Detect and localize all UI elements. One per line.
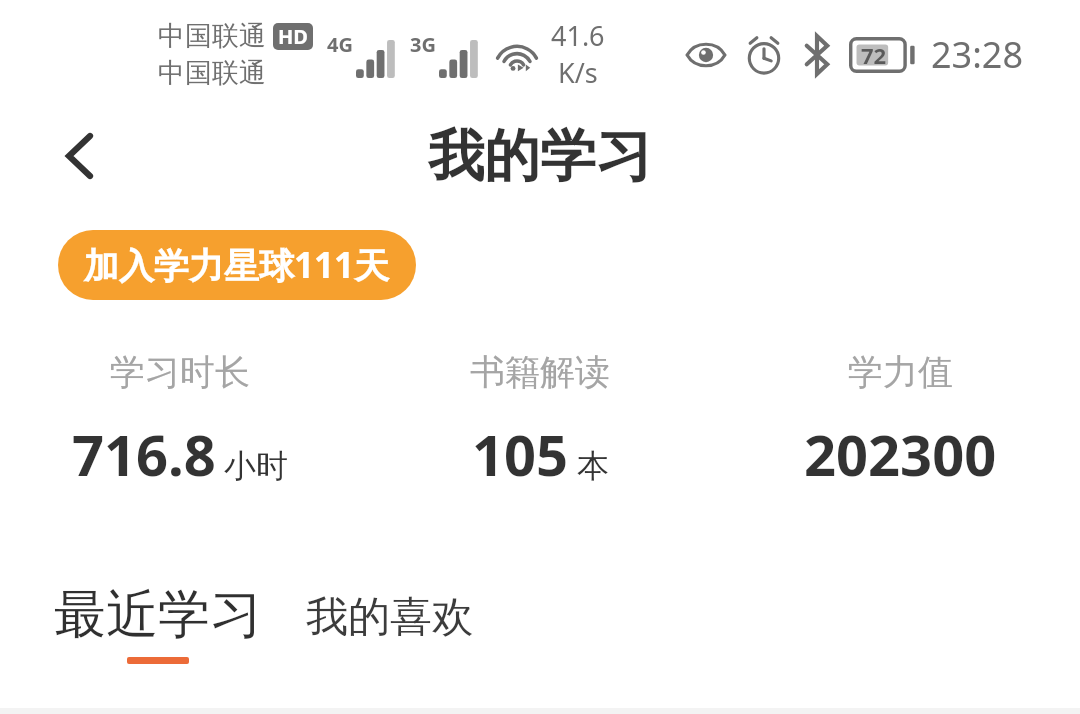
button[interactable]: 学力值 [720, 350, 1080, 492]
staticText: 学力值 [848, 350, 953, 394]
staticText: 3G [410, 31, 436, 58]
staticText: 书籍解读 [470, 350, 610, 394]
staticText: 小时 [224, 446, 288, 486]
staticText: 中国联通 [158, 56, 266, 90]
button[interactable]: 最近学习 [54, 582, 262, 664]
staticText: 我的喜欢 [306, 591, 474, 644]
staticText: 41.6 [551, 17, 605, 54]
button[interactable]: Back [42, 118, 118, 194]
staticText: 716.8 [72, 416, 216, 492]
staticText: 加入学力星球111天 [84, 241, 390, 289]
button[interactable]: 学习时长 [0, 350, 360, 492]
button[interactable]: 加入学力星球111天 [58, 230, 416, 300]
staticText: 学习时长 [110, 350, 250, 394]
staticText: 我的学习 [428, 121, 652, 192]
staticText: 23:28 [931, 30, 1024, 79]
staticText: 202300 [804, 416, 997, 492]
staticText: HD [278, 23, 308, 50]
staticText: 中国联通 [158, 19, 266, 53]
staticText: K/s [558, 54, 598, 91]
button[interactable]: 书籍解读 [360, 350, 720, 492]
staticText: 4G [327, 31, 353, 58]
staticText: 本 [577, 446, 609, 486]
staticText: 105 [472, 416, 569, 492]
button[interactable]: 我的喜欢 [306, 591, 474, 664]
staticText: 最近学习 [54, 582, 262, 648]
staticText: 72 [861, 40, 887, 70]
